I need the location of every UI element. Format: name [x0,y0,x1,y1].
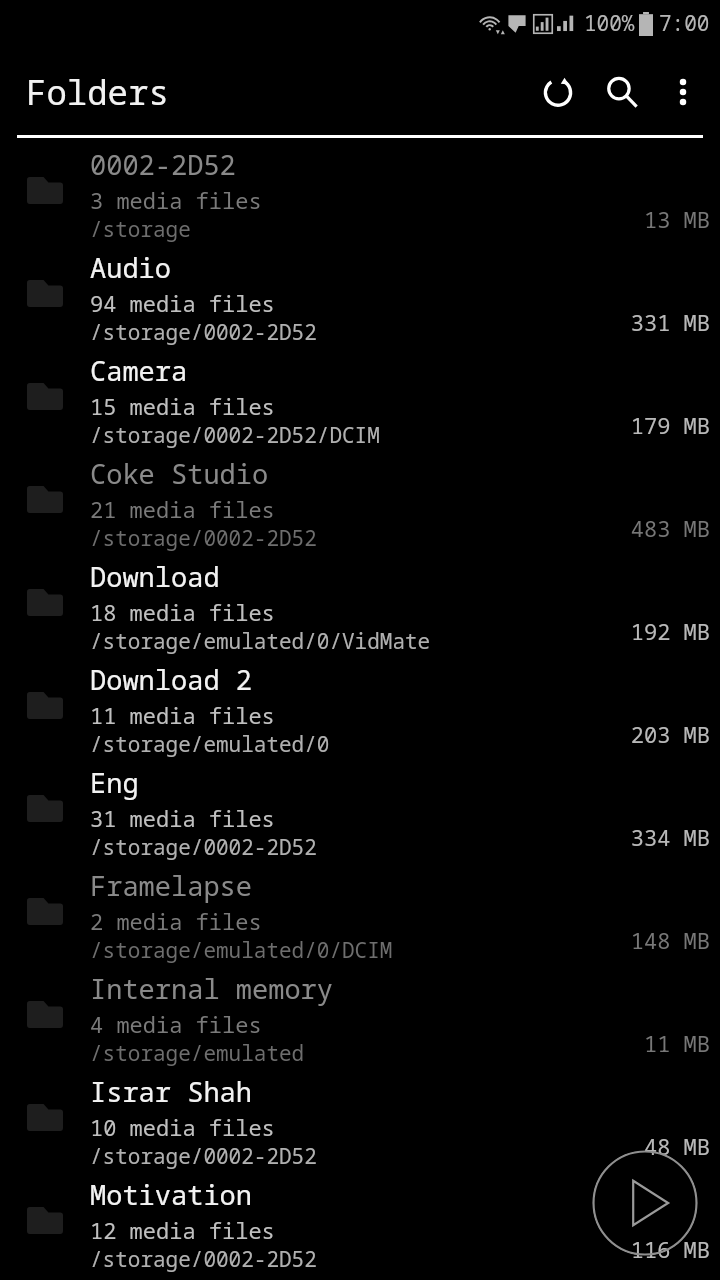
staticText: 148 MB [630,925,710,955]
button[interactable]: Audio [0,244,720,347]
staticText: 15 media files [90,391,275,421]
button[interactable]: Download [0,553,720,656]
staticText: 48 MB [643,1131,710,1161]
staticText: /storage/0002-2D52 [90,1142,317,1171]
staticText: /storage/emulated [90,1039,305,1068]
staticText: Download [90,558,220,595]
staticText: 4 media files [90,1009,262,1039]
staticText: /storage/emulated/0/DCIM [90,936,393,965]
staticText: /storage/0002-2D52 [90,833,317,862]
staticText: 116 MB [630,1234,710,1264]
staticText: Folders [26,69,169,115]
staticText: /storage [90,215,191,244]
button[interactable]: Download 2 [0,656,720,759]
staticText: /storage/0002-2D52 [90,318,317,347]
staticText: 334 MB [630,822,710,852]
staticText: Framelapse [90,867,252,904]
staticText: 31 media files [90,803,275,833]
staticText: 483 MB [630,513,710,543]
button[interactable]: 0002-2D52 [0,141,720,244]
staticText: Internal memory [90,970,333,1007]
staticText: 21 media files [90,494,275,524]
staticText: 13 MB [643,204,710,234]
staticText: /storage/emulated/0 [90,730,330,759]
staticText: Motivation [90,1176,252,1213]
button[interactable]: Camera [0,347,720,450]
staticText: /storage/0002-2D52 [90,1245,317,1274]
staticText: 203 MB [630,719,710,749]
button[interactable]: Coke Studio [0,450,720,553]
button[interactable]: Motivation [0,1171,720,1274]
staticText: Coke Studio [90,455,269,492]
button[interactable]: Refresh [526,60,590,124]
staticText: 11 MB [643,1028,710,1058]
staticText: 12 media files [90,1215,275,1245]
button[interactable]: Internal memory [0,965,720,1068]
staticText: 2 media files [90,906,262,936]
staticText: 10 media files [90,1112,275,1142]
staticText: Eng [90,764,139,801]
staticText: 179 MB [630,410,710,440]
staticText: Camera [90,352,188,389]
staticText: 331 MB [630,307,710,337]
staticText: 11 media files [90,700,275,730]
staticText: Download 2 [90,661,252,698]
button[interactable]: Search [590,60,654,124]
staticText: /storage/emulated/0/VidMate [90,627,431,656]
staticText: 0002-2D52 [90,146,236,183]
staticText: 94 media files [90,288,275,318]
staticText: 3 media files [90,185,262,215]
staticText: /storage/0002-2D52 [90,524,317,553]
button[interactable]: Framelapse [0,862,720,965]
staticText: Audio [90,249,171,286]
staticText: 7:00 [659,9,710,38]
staticText: 18 media files [90,597,275,627]
staticText: 100% [584,9,635,38]
staticText: /storage/0002-2D52/DCIM [90,421,380,450]
button[interactable]: Eng [0,759,720,862]
button[interactable]: Play [592,1150,698,1256]
staticText: Israr Shah [90,1073,252,1110]
staticText: 192 MB [630,616,710,646]
button[interactable]: Israr Shah [0,1068,720,1171]
button[interactable]: More options [654,63,712,121]
